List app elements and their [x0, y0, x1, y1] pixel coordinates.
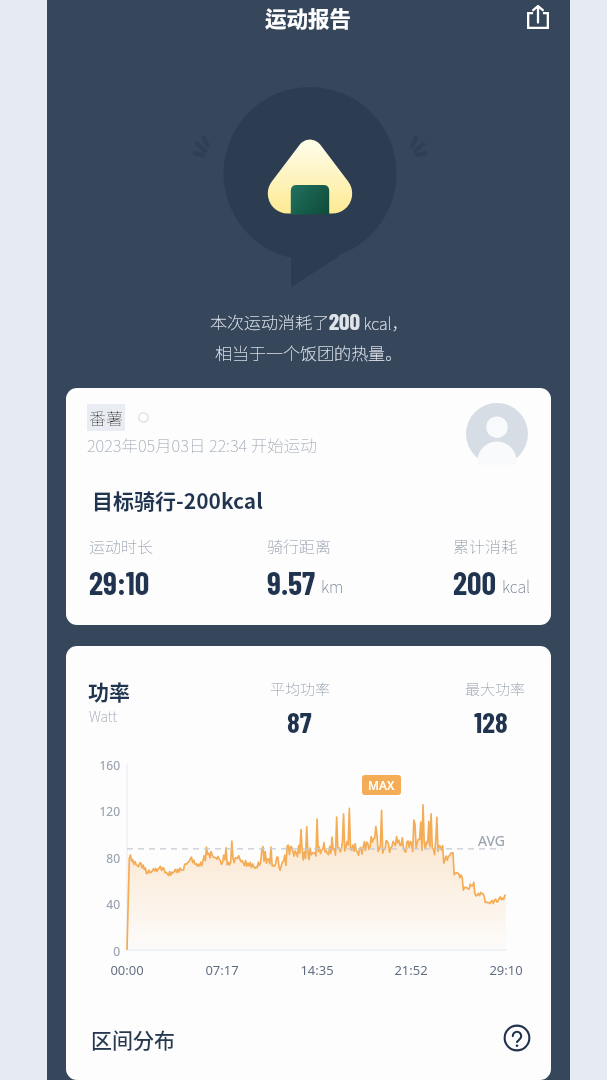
staticText: km — [321, 574, 344, 597]
staticText: 29:10 — [89, 563, 150, 601]
staticText: 14:35 — [287, 961, 347, 979]
staticText: 40 — [90, 896, 120, 912]
staticText: 160 — [90, 757, 120, 773]
staticText: 最大功率 — [465, 678, 526, 700]
staticText: 相当于一个饭团的热量。 — [215, 340, 402, 365]
staticText: kcal， — [360, 311, 408, 334]
staticText: 0 — [90, 943, 120, 959]
staticText: 累计消耗 — [453, 534, 518, 557]
staticText: 00:00 — [97, 961, 157, 979]
staticText: 80 — [90, 850, 120, 866]
staticText: 07:17 — [192, 961, 252, 979]
staticText: 29:10 — [476, 961, 536, 979]
staticText: 番薯 — [89, 405, 123, 430]
staticText: 120 — [90, 803, 120, 819]
staticText: 本次运动消耗了 — [210, 309, 329, 334]
staticText: 2023年05月03日 22:34 开始运动 — [87, 433, 317, 457]
button[interactable]: Help — [503, 1024, 531, 1052]
staticText: 运动报告 — [265, 2, 352, 33]
staticText: 200 — [453, 563, 497, 601]
button[interactable]: Share — [521, 0, 555, 34]
staticText: AVG — [478, 831, 505, 850]
button[interactable]: 番薯 — [66, 388, 551, 625]
staticText: kcal — [502, 574, 531, 597]
staticText: 21:52 — [381, 961, 441, 979]
staticText: 功率 — [88, 676, 130, 706]
staticText: 运动时长 — [89, 534, 154, 557]
staticText: 128 — [474, 704, 508, 739]
staticText: 目标骑行-200kcal — [92, 485, 263, 515]
staticText: 200 — [329, 307, 360, 335]
staticText: Watt — [89, 706, 117, 726]
staticText: 平均功率 — [270, 678, 331, 700]
staticText: 9.57 — [267, 563, 316, 601]
staticText: MAX — [368, 777, 395, 793]
staticText: 骑行距离 — [267, 534, 332, 557]
staticText: 区间分布 — [91, 1024, 175, 1054]
staticText: 87 — [287, 704, 312, 739]
